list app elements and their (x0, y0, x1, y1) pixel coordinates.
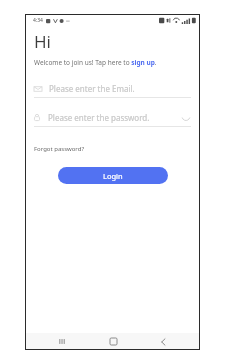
button[interactable]: Email (34, 80, 191, 98)
other: Email (34, 86, 42, 92)
button[interactable]: Back (150, 333, 176, 350)
staticText: Please enter the password. (48, 112, 150, 123)
button[interactable]: Password (34, 109, 191, 127)
staticText: Login (103, 171, 123, 181)
staticText: Forgot password? (34, 145, 85, 153)
staticText: Hi (34, 30, 51, 53)
button[interactable]: Login (58, 167, 168, 184)
staticText: Welcome to join us! Tap here to sign up. (34, 58, 157, 67)
staticText: 4:34 (33, 17, 43, 24)
button[interactable]: Welcome to join us! Tap here to sign up. (34, 58, 157, 67)
other: Password (34, 114, 40, 121)
button[interactable]: Toggle password visibility (180, 112, 191, 123)
staticText: Please enter the Email. (49, 83, 135, 94)
button[interactable]: Forgot password? (34, 143, 85, 155)
button[interactable]: Home (100, 333, 126, 350)
button[interactable]: Recent apps (49, 333, 75, 350)
